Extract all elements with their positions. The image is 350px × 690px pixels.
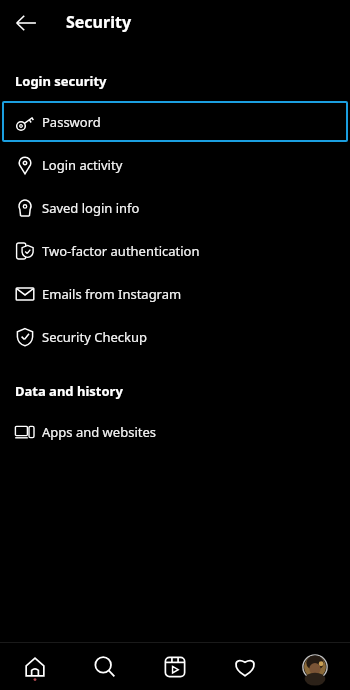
staticText: Login security <box>15 72 107 90</box>
button[interactable]: Login activity <box>0 143 350 186</box>
button[interactable]: Two-factor authentication <box>0 229 350 272</box>
button[interactable]: Home <box>0 643 70 690</box>
staticText: Emails from Instagram <box>42 285 182 303</box>
button[interactable]: Back <box>8 7 44 39</box>
staticText: Security Checkup <box>42 328 147 346</box>
button[interactable]: Password <box>2 101 348 142</box>
button[interactable]: Reels <box>140 643 210 690</box>
staticText: Saved login info <box>42 199 140 217</box>
button[interactable]: Profile <box>280 643 350 690</box>
staticText: Apps and websites <box>42 423 156 441</box>
staticText: Security <box>66 11 132 33</box>
button[interactable]: Apps and websites <box>0 410 350 453</box>
button[interactable]: Search <box>70 643 140 690</box>
button[interactable]: Saved login info <box>0 186 350 229</box>
button[interactable]: Security Checkup <box>0 315 350 358</box>
staticText: Login activity <box>42 156 123 174</box>
staticText: Two-factor authentication <box>42 242 200 260</box>
staticText: Data and history <box>15 382 123 400</box>
staticText: Password <box>42 113 101 131</box>
button[interactable]: Emails from Instagram <box>0 272 350 315</box>
button[interactable]: Activity <box>210 643 280 690</box>
